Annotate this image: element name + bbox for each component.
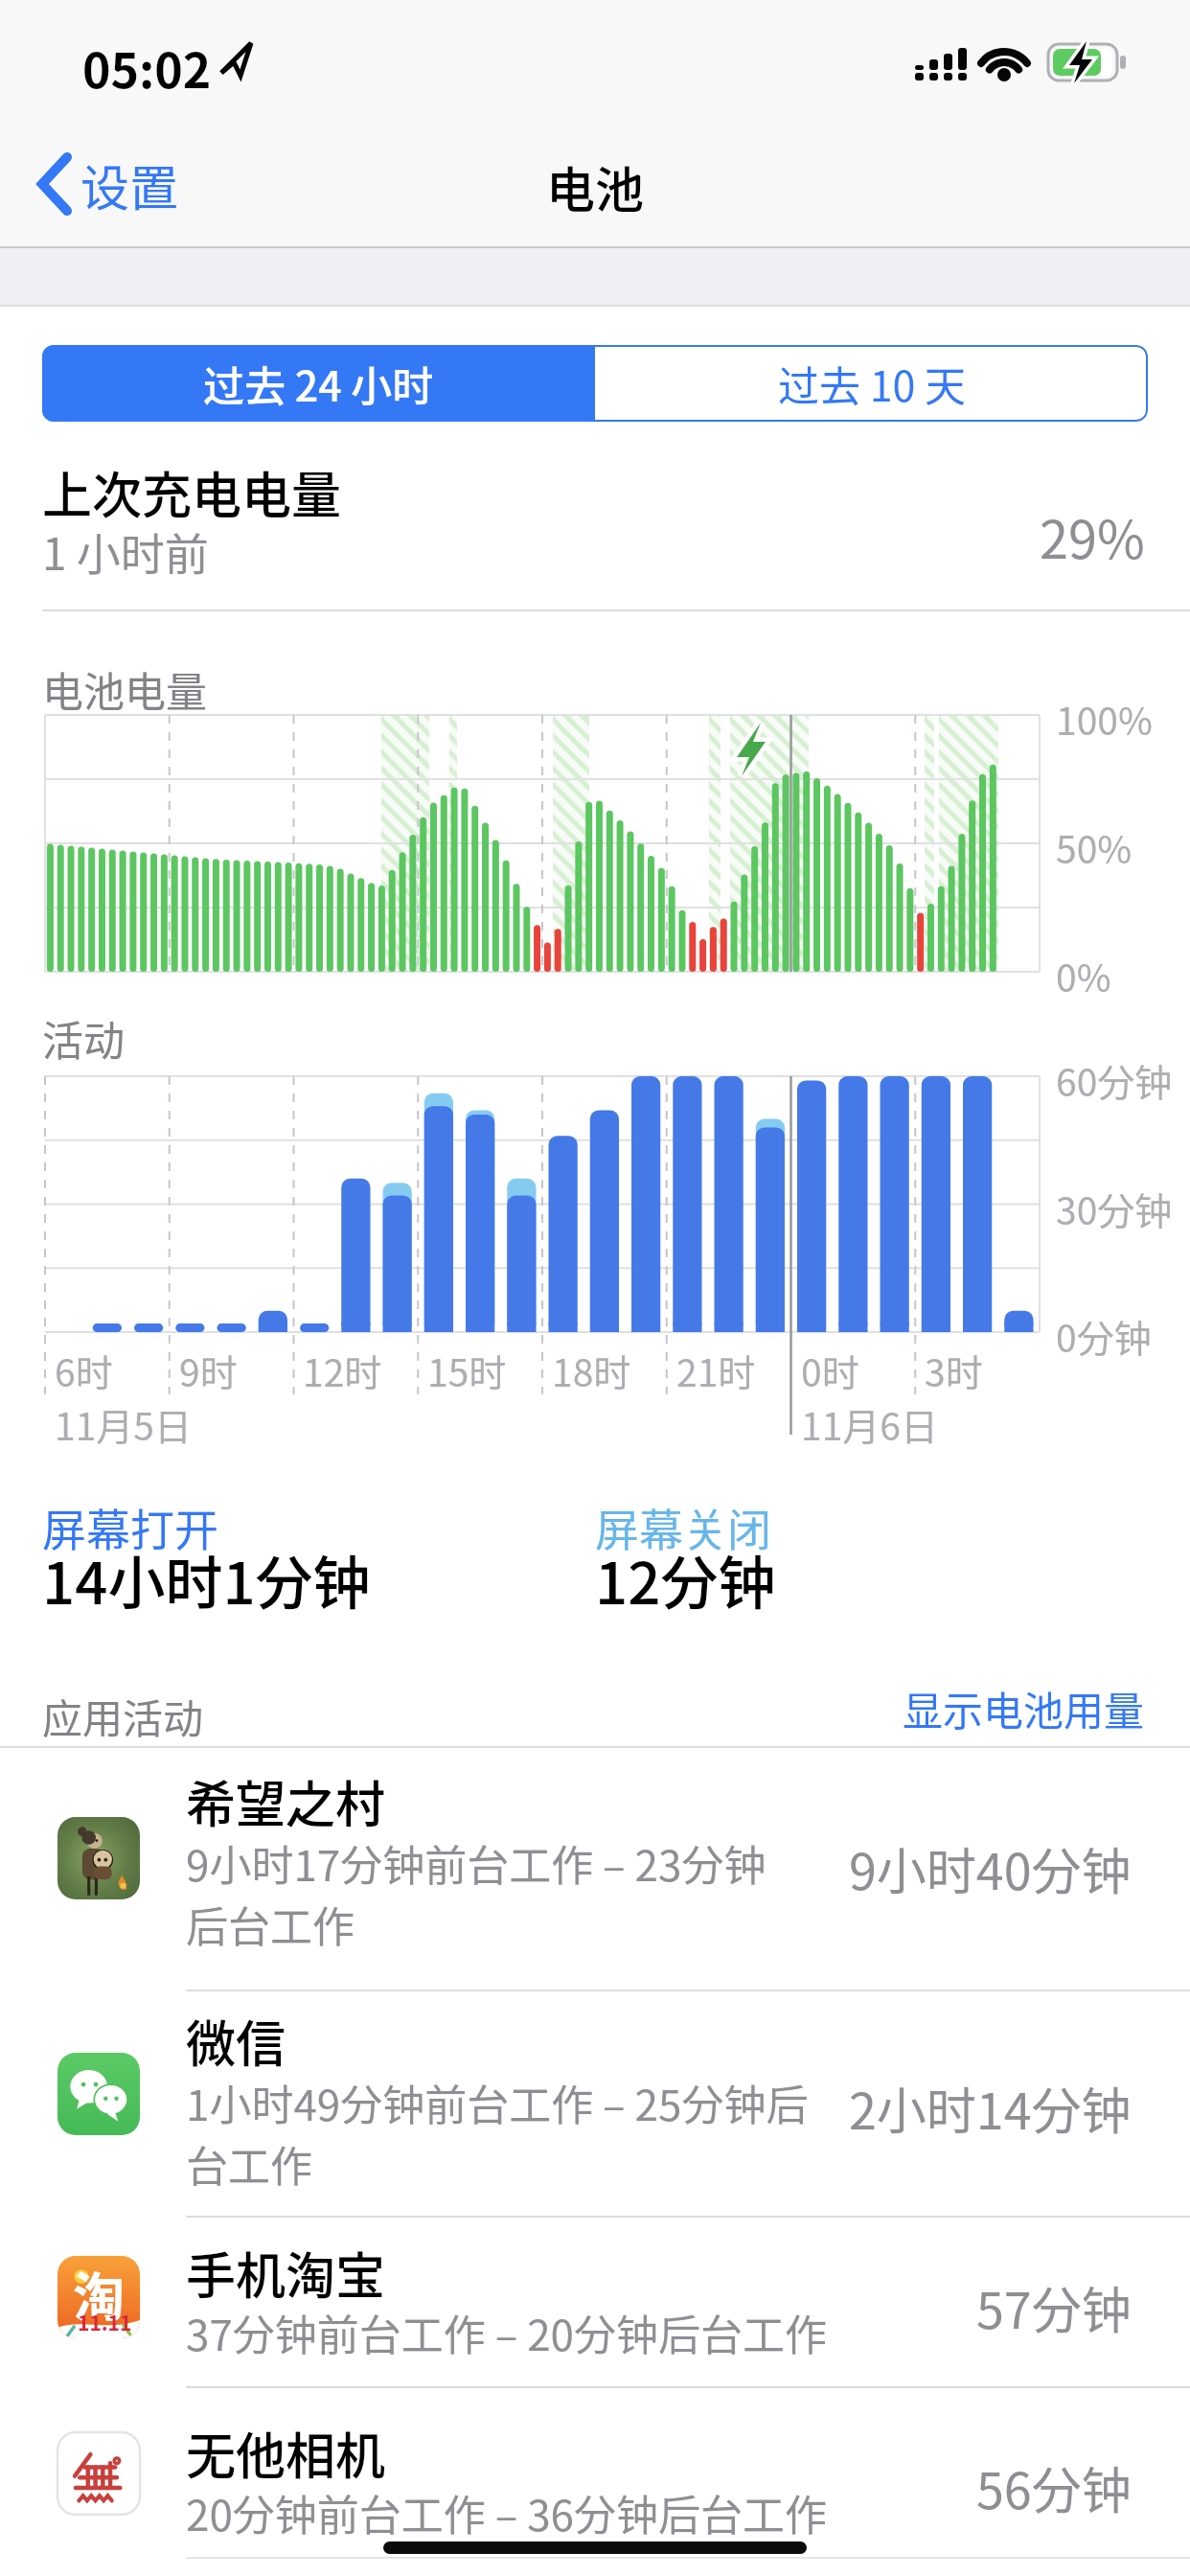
staticText: 57分钟 bbox=[976, 2271, 1132, 2343]
staticText: 9时 bbox=[179, 1344, 238, 1397]
staticText: 手机淘宝 bbox=[186, 2237, 386, 2309]
staticText: 12时 bbox=[303, 1344, 382, 1397]
staticText: 30分钟 bbox=[1056, 1182, 1173, 1235]
staticText: 淘 bbox=[73, 2256, 125, 2331]
button[interactable]: 显示电池用量 bbox=[903, 1679, 1145, 1737]
staticText: 0% bbox=[1056, 949, 1111, 1002]
staticText: 14小时1分钟 bbox=[42, 1537, 371, 1621]
button[interactable]: 过去 24 小时 bbox=[42, 345, 595, 422]
staticText: 屏幕关闭 bbox=[595, 1495, 771, 1559]
staticText: 过去 24 小时 bbox=[203, 354, 434, 413]
staticText: 50% bbox=[1056, 820, 1133, 874]
staticText: 显示电池用量 bbox=[903, 1679, 1145, 1737]
staticText: 微信 bbox=[186, 2005, 286, 2077]
staticText: 1 小时前 bbox=[42, 519, 209, 584]
staticText: 21时 bbox=[676, 1344, 756, 1397]
staticText: 3时 bbox=[925, 1344, 983, 1397]
staticText: 上次充电电量 bbox=[42, 456, 342, 528]
staticText: 20分钟前台工作 – 36分钟后台工作 bbox=[186, 2482, 827, 2543]
staticText: 希望之村 bbox=[186, 1765, 386, 1837]
staticText: 100% bbox=[1056, 692, 1153, 746]
staticText: 后台工作 bbox=[186, 1894, 355, 1955]
staticText: 9小时40分钟 bbox=[849, 1832, 1132, 1904]
staticText: 11月5日 bbox=[55, 1397, 192, 1451]
staticText: 0分钟 bbox=[1056, 1309, 1152, 1363]
staticText: 11.11 bbox=[78, 2308, 132, 2336]
button[interactable]: 希望之村 bbox=[0, 1750, 1190, 1989]
staticText: 9小时17分钟前台工作 – 23分钟 bbox=[186, 1832, 767, 1894]
staticText: 29% bbox=[1040, 498, 1145, 573]
staticText: 60分钟 bbox=[1056, 1053, 1173, 1107]
staticText: 6时 bbox=[55, 1344, 113, 1397]
staticText: 56分钟 bbox=[976, 2451, 1132, 2523]
staticText: 18时 bbox=[552, 1344, 631, 1397]
staticText: 无他相机 bbox=[186, 2417, 386, 2489]
staticText: 05:02 bbox=[82, 33, 212, 102]
staticText: 应用活动 bbox=[42, 1687, 204, 1745]
staticText: 台工作 bbox=[186, 2133, 312, 2195]
button[interactable]: 微信 bbox=[0, 1991, 1190, 2216]
staticText: 15时 bbox=[427, 1344, 507, 1397]
staticText: 过去 10 天 bbox=[778, 354, 966, 413]
staticText: 11月6日 bbox=[801, 1397, 938, 1451]
button[interactable]: 无他相机 bbox=[0, 2388, 1190, 2557]
staticText: 设置 bbox=[80, 149, 179, 220]
staticText: 12分钟 bbox=[595, 1537, 776, 1621]
button[interactable]: 过去 10 天 bbox=[595, 345, 1148, 422]
staticText: 0时 bbox=[801, 1344, 859, 1397]
staticText: 电池电量 bbox=[42, 659, 207, 719]
staticText: 2小时14分钟 bbox=[849, 2072, 1132, 2144]
button[interactable]: 设置 bbox=[27, 144, 199, 224]
staticText: 37分钟前台工作 – 20分钟后台工作 bbox=[186, 2302, 827, 2363]
staticText: 活动 bbox=[42, 1008, 125, 1068]
staticText: 电池 bbox=[546, 151, 645, 222]
button[interactable]: 手机淘宝 bbox=[0, 2218, 1190, 2386]
staticText: 1小时49分钟前台工作 – 25分钟后 bbox=[186, 2072, 809, 2133]
staticText: 屏幕打开 bbox=[42, 1495, 218, 1559]
